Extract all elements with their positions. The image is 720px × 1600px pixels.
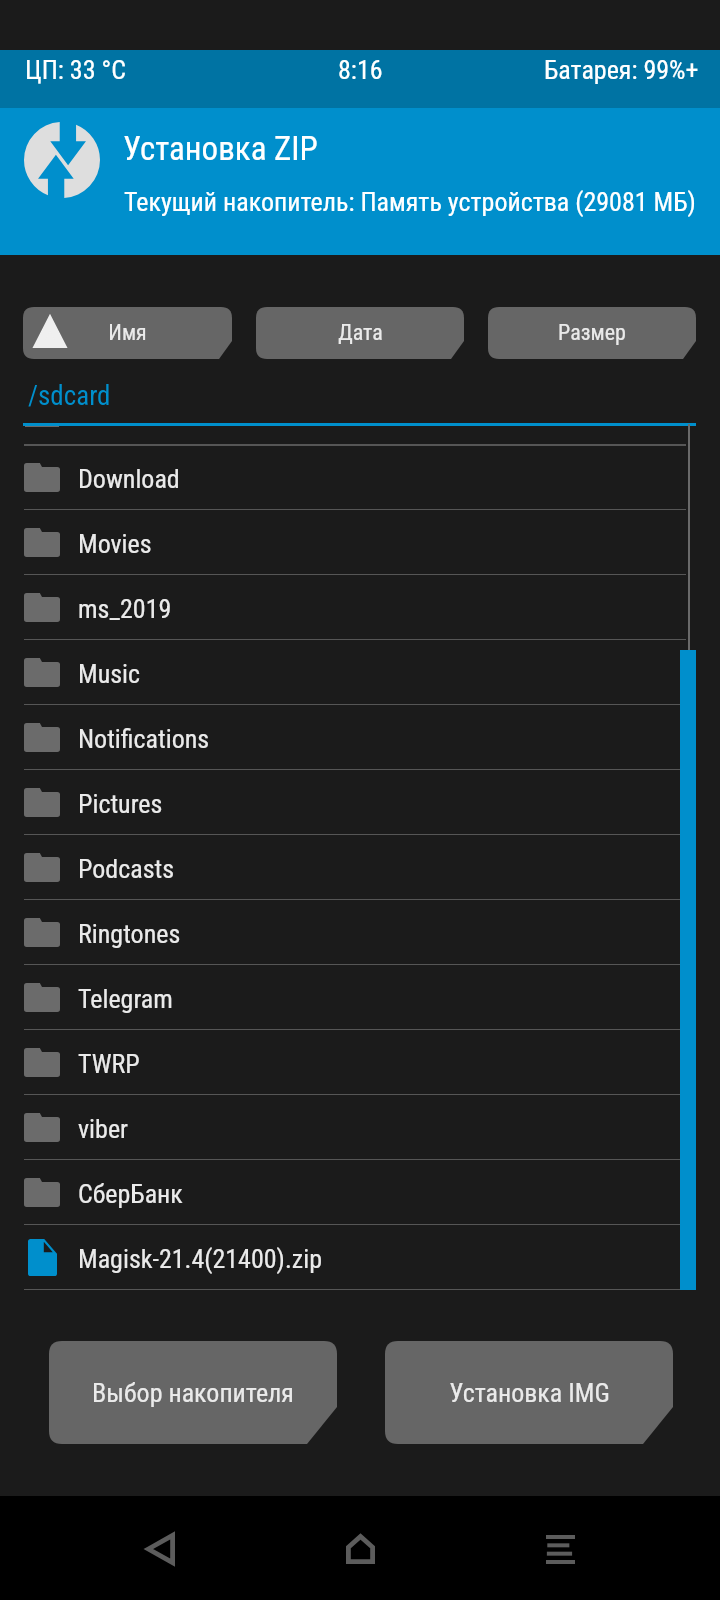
button[interactable]: Дата — [256, 307, 464, 359]
staticText: Movies — [78, 529, 152, 559]
button[interactable]: Ringtones — [0, 900, 720, 965]
button[interactable]: Размер — [488, 307, 696, 359]
button[interactable]: Magisk-21.4(21400).zip — [0, 1225, 720, 1290]
staticText: Pictures — [78, 789, 163, 819]
staticText: Имя — [108, 320, 147, 346]
button[interactable]: Podcasts — [0, 835, 720, 900]
staticText: TWRP — [78, 1049, 140, 1079]
button[interactable]: Notifications — [0, 705, 720, 770]
staticText: Батарея: 99%+ — [544, 55, 699, 85]
staticText: Установка IMG — [449, 1378, 610, 1408]
button[interactable]: Music — [0, 640, 720, 705]
staticText: Текущий накопитель: Память устройства (2… — [124, 187, 696, 217]
staticText: Выбор накопителя — [92, 1378, 294, 1408]
staticText: Podcasts — [78, 854, 175, 884]
button[interactable]: ms_2019 — [0, 575, 720, 640]
button[interactable]: Выбор накопителя — [49, 1341, 337, 1444]
staticText: 8:16 — [338, 55, 383, 85]
button[interactable]: Back — [101, 1504, 220, 1594]
staticText: Telegram — [78, 984, 173, 1014]
staticText: ms_2019 — [78, 594, 172, 624]
staticText: Дата — [338, 320, 383, 346]
button[interactable]: СберБанк — [0, 1160, 720, 1225]
staticText: Notifications — [78, 724, 210, 754]
staticText: Размер — [558, 320, 626, 346]
staticText: Download — [78, 464, 180, 494]
button[interactable]: viber — [0, 1095, 720, 1160]
button[interactable]: Download — [0, 445, 720, 510]
staticText: СберБанк — [78, 1179, 183, 1209]
button[interactable]: Имя — [23, 307, 232, 359]
button[interactable]: Menu — [501, 1504, 620, 1594]
staticText: Ringtones — [78, 919, 181, 949]
button[interactable]: Pictures — [0, 770, 720, 835]
button[interactable]: Movies — [0, 510, 720, 575]
staticText: ЦП: 33 °C — [25, 55, 126, 85]
staticText: Установка ZIP — [123, 129, 318, 168]
button[interactable]: Установка IMG — [385, 1341, 673, 1444]
button[interactable]: Home — [301, 1504, 420, 1594]
button[interactable]: Telegram — [0, 965, 720, 1030]
staticText: Magisk-21.4(21400).zip — [78, 1244, 322, 1274]
staticText: /sdcard — [28, 380, 111, 412]
staticText: viber — [78, 1114, 129, 1144]
button[interactable]: TWRP — [0, 1030, 720, 1095]
staticText: Music — [78, 659, 141, 689]
